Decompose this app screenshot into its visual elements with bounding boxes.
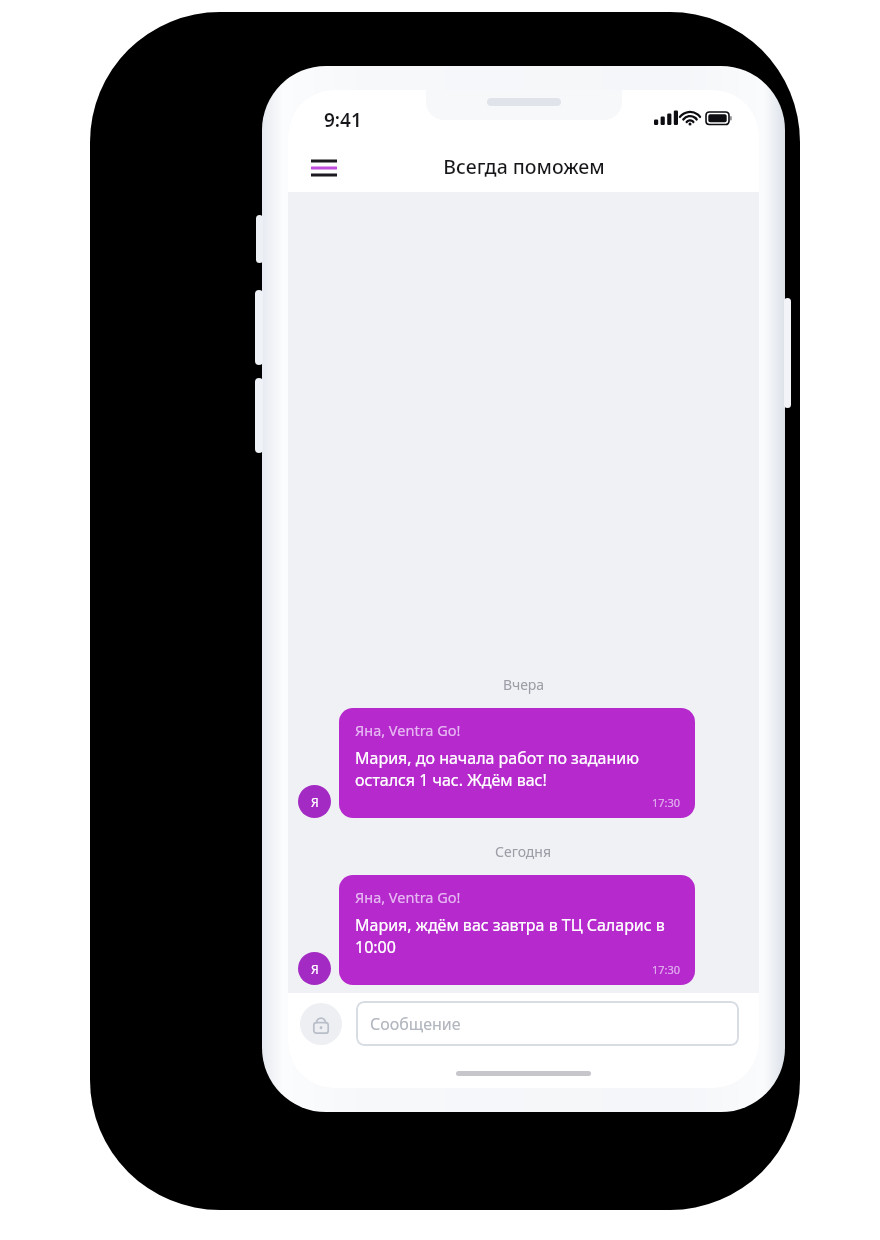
button[interactable]: Яна, Ventra Go!	[339, 875, 695, 985]
staticText: 9:41	[324, 107, 362, 133]
staticText: Всегда поможем	[443, 153, 605, 180]
staticText: 17:30	[652, 962, 681, 977]
staticText: Сообщение	[370, 1013, 461, 1035]
button[interactable]: Menu	[306, 150, 342, 186]
button[interactable]: Я	[298, 785, 331, 818]
staticText: Сегодня	[495, 842, 552, 861]
staticText: Яна, Ventra Go!	[355, 887, 461, 907]
staticText: Я	[311, 961, 319, 977]
staticText: Мария, до начала работ по заданию осталс…	[355, 747, 681, 791]
staticText: Мария, ждём вас завтра в ТЦ Саларис в 10…	[355, 914, 681, 958]
button[interactable]: Я	[298, 952, 331, 985]
staticText: 17:30	[652, 795, 681, 810]
staticText: Яна, Ventra Go!	[355, 720, 461, 740]
button[interactable]: Сообщение	[356, 1001, 739, 1046]
button[interactable]: Яна, Ventra Go!	[339, 708, 695, 818]
staticText: Вчера	[503, 675, 545, 694]
button[interactable]: Secure	[300, 1003, 342, 1045]
staticText: Я	[311, 794, 319, 810]
